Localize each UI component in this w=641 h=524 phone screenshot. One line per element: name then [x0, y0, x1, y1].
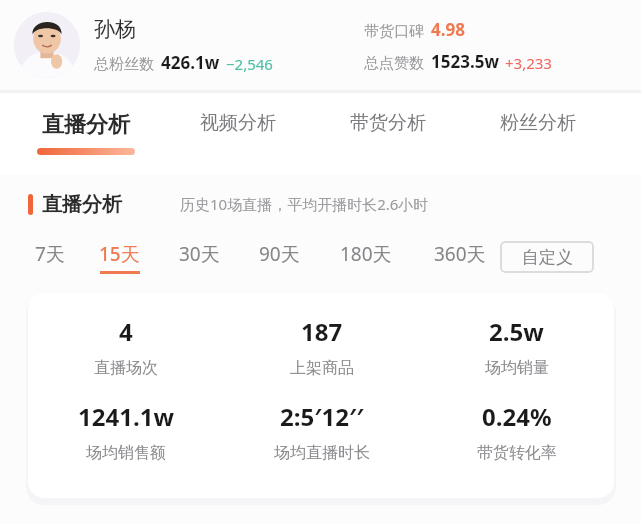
staticText: 总粉丝数 — [94, 55, 154, 74]
button[interactable]: 粉丝分析 — [476, 93, 600, 175]
staticText: 场均直播时长 — [274, 443, 370, 463]
staticText: 场均销售额 — [86, 443, 166, 463]
staticText: 2.5w — [489, 315, 544, 348]
staticText: 场均销量 — [485, 358, 549, 378]
staticText: 上架商品 — [290, 358, 354, 378]
button[interactable]: 直播分析 — [24, 93, 148, 175]
staticText: 0.24% — [482, 400, 552, 433]
button[interactable]: 30天 — [168, 235, 230, 285]
button[interactable]: 7天 — [28, 235, 72, 285]
staticText: 自定义 — [522, 247, 573, 268]
staticText: 直播场次 — [94, 358, 158, 378]
staticText: 总点赞数 — [364, 54, 424, 73]
staticText: 1523.5w — [431, 50, 499, 73]
button[interactable]: 360天 — [420, 235, 500, 285]
staticText: 360天 — [434, 241, 486, 267]
button[interactable]: 2.5w — [419, 315, 614, 378]
staticText: 直播分析 — [42, 192, 122, 217]
button[interactable]: 带货分析 — [326, 93, 450, 175]
staticText: 1241.1w — [78, 400, 174, 433]
staticText: 带货转化率 — [477, 443, 557, 463]
staticText: 426.1w — [161, 51, 220, 74]
button[interactable]: 90天 — [248, 235, 310, 285]
button[interactable]: 4 — [28, 315, 224, 378]
button[interactable]: 2:5′12′′ — [224, 400, 419, 463]
staticText: 7天 — [35, 241, 65, 267]
staticText: 带货口碑 — [364, 22, 424, 41]
button[interactable]: 1241.1w — [28, 400, 224, 463]
staticText: 带货分析 — [350, 111, 426, 135]
staticText: 4.98 — [431, 18, 465, 41]
staticText: 孙杨 — [94, 16, 136, 42]
staticText: +3,233 — [505, 53, 552, 73]
button[interactable]: Profile avatar — [14, 12, 80, 78]
button[interactable]: 15天 — [90, 235, 148, 285]
staticText: 180天 — [340, 241, 392, 267]
button[interactable]: 180天 — [326, 235, 406, 285]
staticText: 粉丝分析 — [500, 111, 576, 135]
button[interactable]: 视频分析 — [176, 93, 300, 175]
staticText: 历史10场直播，平均开播时长2.6小时 — [180, 194, 429, 214]
staticText: 15天 — [99, 241, 140, 267]
staticText: −2,546 — [226, 54, 273, 74]
button[interactable]: 自定义 — [500, 241, 594, 273]
staticText: 2:5′12′′ — [280, 400, 364, 433]
staticText: 4 — [119, 315, 133, 348]
button[interactable]: 0.24% — [419, 400, 614, 463]
button[interactable]: 187 — [224, 315, 419, 378]
staticText: 直播分析 — [42, 111, 130, 139]
staticText: 90天 — [259, 241, 300, 267]
staticText: 187 — [301, 315, 343, 348]
staticText: 30天 — [179, 241, 220, 267]
staticText: 视频分析 — [200, 111, 276, 135]
